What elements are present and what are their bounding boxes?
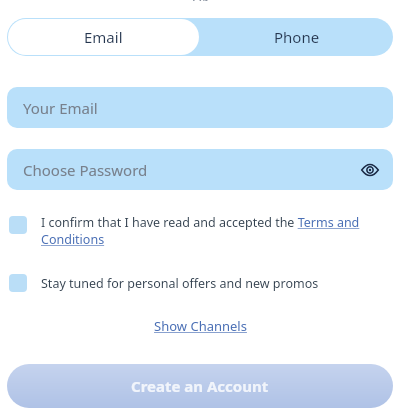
- staticText: Show Channels: [154, 317, 247, 335]
- button[interactable]: Show password: [358, 158, 382, 182]
- staticText: Create an Account: [131, 376, 269, 396]
- button[interactable]: Email: [8, 19, 199, 55]
- staticText: Email: [84, 27, 123, 47]
- staticText: Choose Password: [23, 160, 148, 180]
- staticText: Phone: [274, 27, 320, 47]
- button[interactable]: Choose Password: [7, 149, 393, 190]
- staticText: I confirm that I have read and accepted …: [41, 214, 385, 248]
- staticText: Your Email: [23, 98, 98, 118]
- button[interactable]: Phone: [200, 18, 393, 56]
- button[interactable]: I confirm that I have read and accepted …: [7, 214, 393, 248]
- button[interactable]: Stay tuned for personal offers and new p…: [7, 274, 393, 292]
- button[interactable]: Show Channels: [148, 315, 253, 337]
- button[interactable]: Create an Account: [7, 364, 393, 408]
- button[interactable]: Your Email: [7, 87, 393, 128]
- staticText: Stay tuned for personal offers and new p…: [41, 275, 319, 292]
- staticText: Or: [192, 0, 208, 1]
